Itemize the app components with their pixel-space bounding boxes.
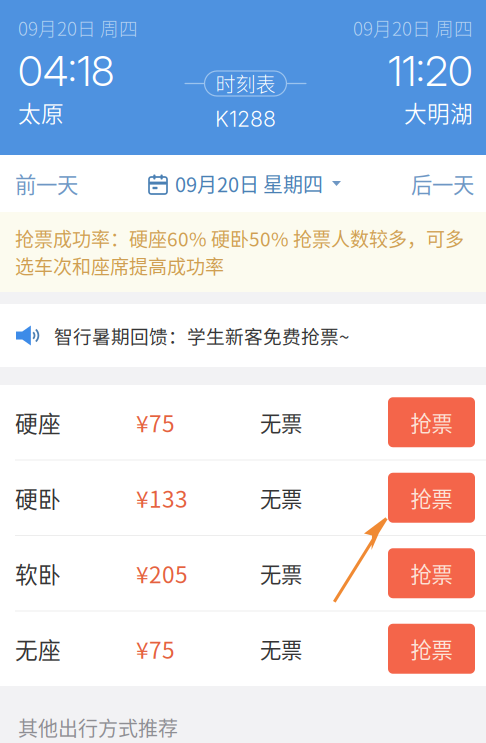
button[interactable]: 后一天 (393, 155, 486, 212)
staticText: ¥133 (136, 481, 188, 514)
staticText: 11:20 (388, 46, 473, 96)
staticText: 09月20日 周四 (353, 14, 473, 41)
staticText: 04:18 (18, 46, 114, 96)
staticText: 抢票 (410, 633, 452, 664)
staticText: 无票 (260, 633, 302, 664)
staticText: 抢票成功率：硬座60% 硬卧50% 抢票人数较多，可多选车次和座席提高成功率 (15, 224, 464, 280)
staticText: 智行暑期回馈：学生新客免费抢票~ (54, 322, 349, 349)
staticText: 后一天 (411, 168, 474, 199)
staticText: 其他出行方式推荐 (18, 713, 178, 742)
button[interactable]: 硬卧 (0, 460, 486, 535)
button[interactable]: 前一天 (0, 155, 96, 212)
button[interactable]: 软卧 (0, 536, 486, 610)
staticText: 软卧 (15, 557, 61, 590)
staticText: 无票 (260, 407, 302, 438)
staticText: 硬卧 (15, 481, 61, 514)
staticText: 前一天 (15, 168, 78, 199)
staticText: ¥205 (136, 557, 188, 590)
staticText: 抢票 (410, 558, 452, 589)
button[interactable]: 09月20日 星期四 (148, 155, 341, 212)
staticText: 09月20日 星期四 (175, 169, 323, 198)
staticText: 无票 (260, 558, 302, 589)
staticText: 大明湖 (404, 96, 473, 129)
staticText: 无座 (15, 632, 61, 665)
button[interactable]: 无座 (0, 611, 486, 686)
staticText: 硬座 (15, 406, 61, 439)
staticText: 抢票 (410, 482, 452, 513)
staticText: K1288 (215, 106, 276, 132)
button[interactable]: 硬座 (0, 385, 486, 459)
staticText: 09月20日 周四 (18, 14, 138, 41)
button[interactable]: 智行暑期回馈：学生新客免费抢票~ (0, 304, 486, 367)
staticText: ¥75 (136, 632, 175, 665)
staticText: 抢票 (410, 407, 452, 438)
staticText: 太原 (18, 96, 64, 129)
staticText: ¥75 (136, 406, 175, 439)
staticText: 时刻表 (215, 69, 275, 98)
staticText: 无票 (260, 482, 302, 513)
